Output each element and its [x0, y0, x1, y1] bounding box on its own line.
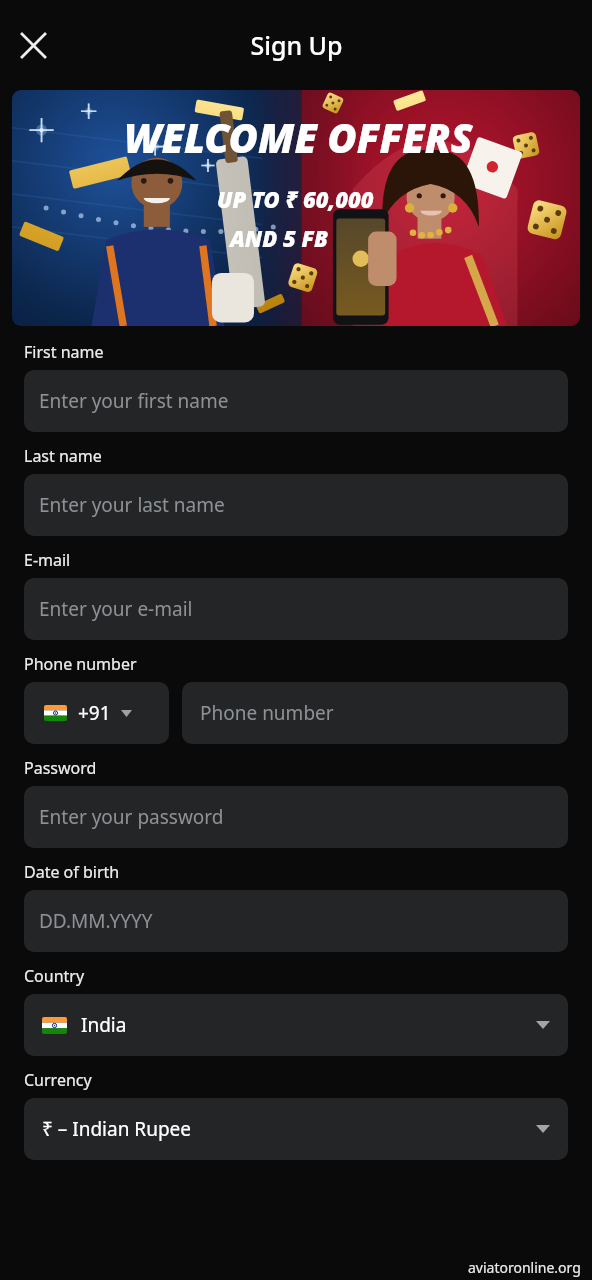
staticText: Country: [24, 965, 85, 987]
staticText: India: [81, 1012, 127, 1038]
staticText: Currency: [24, 1069, 92, 1091]
button[interactable]: Enter your last name: [24, 474, 568, 536]
staticText: Sign Up: [250, 28, 343, 62]
button[interactable]: DD.MM.YYYY: [24, 890, 568, 952]
staticText: aviatoronline.org: [468, 1258, 581, 1277]
staticText: +91: [78, 700, 111, 726]
button[interactable]: Enter your password: [24, 786, 568, 848]
staticText: Last name: [24, 445, 102, 467]
button[interactable]: Country code +91: [24, 682, 169, 744]
staticText: Enter your last name: [39, 492, 225, 518]
staticText: Date of birth: [24, 861, 120, 883]
staticText: DD.MM.YYYY: [39, 908, 153, 934]
staticText: Password: [24, 757, 97, 779]
staticText: Enter your e-mail: [39, 596, 193, 622]
staticText: ₹ – Indian Rupee: [42, 1116, 192, 1142]
staticText: First name: [24, 341, 104, 363]
staticText: AND 5 FB: [230, 223, 328, 253]
button[interactable]: Welcome offers banner: [12, 90, 580, 326]
button[interactable]: Enter your e-mail: [24, 578, 568, 640]
staticText: Enter your first name: [39, 388, 229, 414]
button[interactable]: Close: [11, 23, 55, 67]
button[interactable]: ₹ – Indian Rupee: [24, 1098, 568, 1160]
staticText: E-mail: [24, 549, 71, 571]
staticText: Enter your password: [39, 804, 224, 830]
button[interactable]: Enter your first name: [24, 370, 568, 432]
button[interactable]: Phone number: [182, 682, 568, 744]
staticText: Phone number: [24, 653, 137, 675]
button[interactable]: India: [24, 994, 568, 1056]
staticText: Phone number: [200, 700, 334, 726]
staticText: WELCOME OFFERS: [124, 110, 473, 164]
staticText: UP TO ₹ 60,000: [217, 184, 374, 214]
